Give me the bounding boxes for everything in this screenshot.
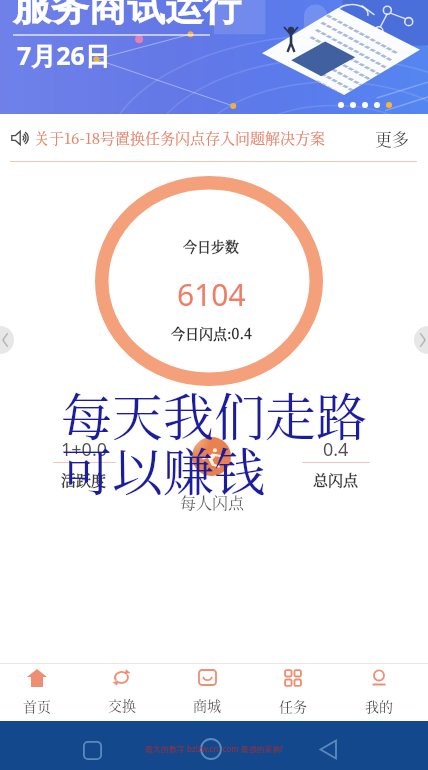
staticText: 关于16-18号置换任务闪点存入问题解决方案 xyxy=(34,127,326,149)
staticText: 0.4 xyxy=(323,437,349,462)
button[interactable]: 开始跑步 xyxy=(192,437,231,476)
staticText: 7月26日 xyxy=(17,38,110,72)
button[interactable]: 任务 xyxy=(250,663,336,721)
staticText: 总闪点 xyxy=(313,469,359,491)
staticText: 服务商试运行 xyxy=(13,0,241,31)
staticText: 今日闪点:0.4 xyxy=(171,323,252,343)
button[interactable]: 我的 xyxy=(336,663,422,721)
staticText: 每天我们走路 xyxy=(61,377,368,450)
button[interactable]: Recents xyxy=(78,736,106,764)
staticText: 商城 xyxy=(193,695,221,715)
button[interactable]: 首页 xyxy=(0,663,79,721)
button[interactable]: 交换 xyxy=(79,663,164,721)
staticText: 1+0.0 xyxy=(61,437,108,462)
staticText: 任务 xyxy=(279,696,307,716)
staticText: 活跃度 xyxy=(61,469,107,491)
button[interactable]: 更多 xyxy=(375,126,409,150)
staticText: 交换 xyxy=(108,695,136,715)
staticText: 今日步数 xyxy=(183,236,239,256)
button[interactable]: 商城 xyxy=(164,663,250,721)
button[interactable]: Home xyxy=(197,735,225,763)
staticText: 可以赚钱 xyxy=(61,432,266,505)
button[interactable]: Back xyxy=(314,735,342,763)
staticText: 每人闪点 xyxy=(180,491,245,514)
staticText: 我的 xyxy=(365,696,393,716)
staticText: 首页 xyxy=(23,696,51,716)
staticText: 6104 xyxy=(177,274,246,315)
staticText: 最大的数字 bzlzw.cn .com 最强的采购! xyxy=(145,743,284,754)
